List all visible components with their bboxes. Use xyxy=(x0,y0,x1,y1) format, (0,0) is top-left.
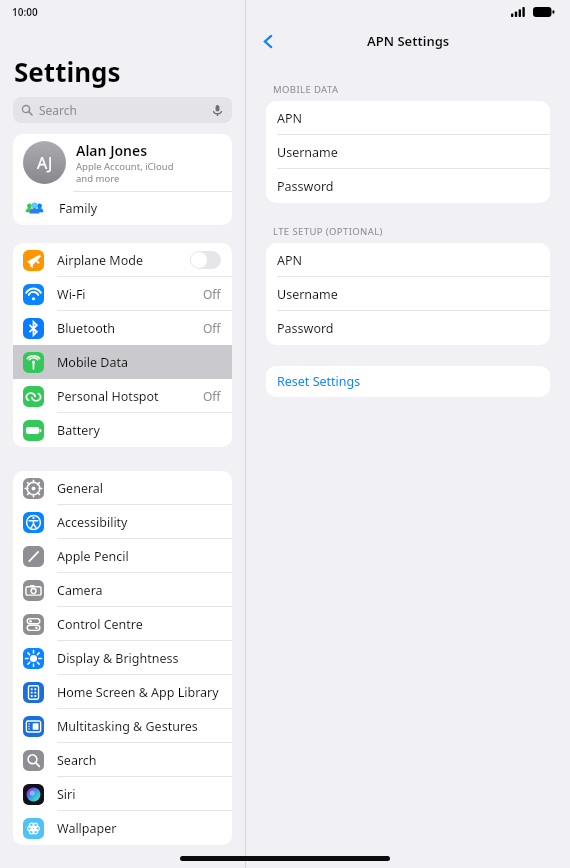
button[interactable]: Wallpaper xyxy=(13,811,232,845)
staticText: Battery xyxy=(57,422,100,439)
button[interactable]: Password xyxy=(266,169,550,203)
staticText: Alan Jones xyxy=(76,141,148,160)
button[interactable]: Display & Brightness xyxy=(13,641,232,675)
button[interactable]: Camera xyxy=(13,573,232,607)
button[interactable]: Username xyxy=(266,135,550,169)
staticText: Apple Pencil xyxy=(57,548,129,565)
staticText: Display & Brightness xyxy=(57,650,179,667)
staticText: Airplane Mode xyxy=(57,252,143,269)
button[interactable]: Personal Hotspot xyxy=(13,379,232,413)
button[interactable]: APN xyxy=(266,101,550,135)
staticText: Off xyxy=(203,320,221,336)
button[interactable]: Username xyxy=(266,277,550,311)
button[interactable]: Apple Pencil xyxy=(13,539,232,573)
button[interactable]: Mobile Data xyxy=(13,345,232,379)
staticText: Off xyxy=(203,286,221,302)
button[interactable]: Battery xyxy=(13,413,232,447)
button[interactable]: Control Centre xyxy=(13,607,232,641)
staticText: Personal Hotspot xyxy=(57,388,159,405)
staticText: Multitasking & Gestures xyxy=(57,718,198,735)
staticText: AJ xyxy=(37,152,53,174)
button[interactable]: Password xyxy=(266,311,550,345)
staticText: Wi-Fi xyxy=(57,286,86,303)
button[interactable]: Back xyxy=(254,27,282,55)
staticText: Apple Account, iCloud and more xyxy=(76,160,174,185)
staticText: Siri xyxy=(57,786,76,803)
staticText: Reset Settings xyxy=(277,373,361,390)
button[interactable]: Wi-Fi xyxy=(13,277,232,311)
button[interactable]: Home Screen & App Library xyxy=(13,675,232,709)
staticText: Wallpaper xyxy=(57,820,117,837)
staticText: APN Settings xyxy=(367,32,450,50)
staticText: Search xyxy=(39,102,77,118)
staticText: Family xyxy=(59,200,98,217)
staticText: MOBILE DATA xyxy=(273,83,339,96)
button[interactable]: AJ xyxy=(13,134,232,191)
button[interactable]: Search xyxy=(13,743,232,777)
staticText: APN xyxy=(277,110,303,127)
button[interactable]: Family xyxy=(13,192,232,225)
button[interactable]: APN xyxy=(266,243,550,277)
button[interactable]: Siri xyxy=(13,777,232,811)
staticText: Accessibility xyxy=(57,514,128,531)
button[interactable]: Multitasking & Gestures xyxy=(13,709,232,743)
staticText: Control Centre xyxy=(57,616,143,633)
staticText: 10:00 xyxy=(12,5,38,19)
button[interactable]: General xyxy=(13,471,232,505)
staticText: Off xyxy=(203,388,221,404)
button[interactable] xyxy=(190,251,221,269)
staticText: APN xyxy=(277,252,303,269)
staticText: Home Screen & App Library xyxy=(57,684,219,701)
staticText: Password xyxy=(277,178,334,195)
button[interactable]: Bluetooth xyxy=(13,311,232,345)
staticText: Username xyxy=(277,144,338,161)
button[interactable]: Reset Settings xyxy=(266,366,550,397)
staticText: Settings xyxy=(14,54,121,89)
staticText: LTE SETUP (OPTIONAL) xyxy=(273,225,383,238)
staticText: Bluetooth xyxy=(57,320,116,337)
button[interactable]: Airplane Mode xyxy=(13,243,232,277)
staticText: Camera xyxy=(57,582,103,599)
button[interactable]: Accessibility xyxy=(13,505,232,539)
other: Voice search xyxy=(211,104,224,117)
staticText: Password xyxy=(277,320,334,337)
staticText: Search xyxy=(57,752,97,769)
button[interactable]: Search xyxy=(13,97,232,123)
staticText: Mobile Data xyxy=(57,354,129,371)
staticText: Username xyxy=(277,286,338,303)
staticText: General xyxy=(57,480,104,497)
